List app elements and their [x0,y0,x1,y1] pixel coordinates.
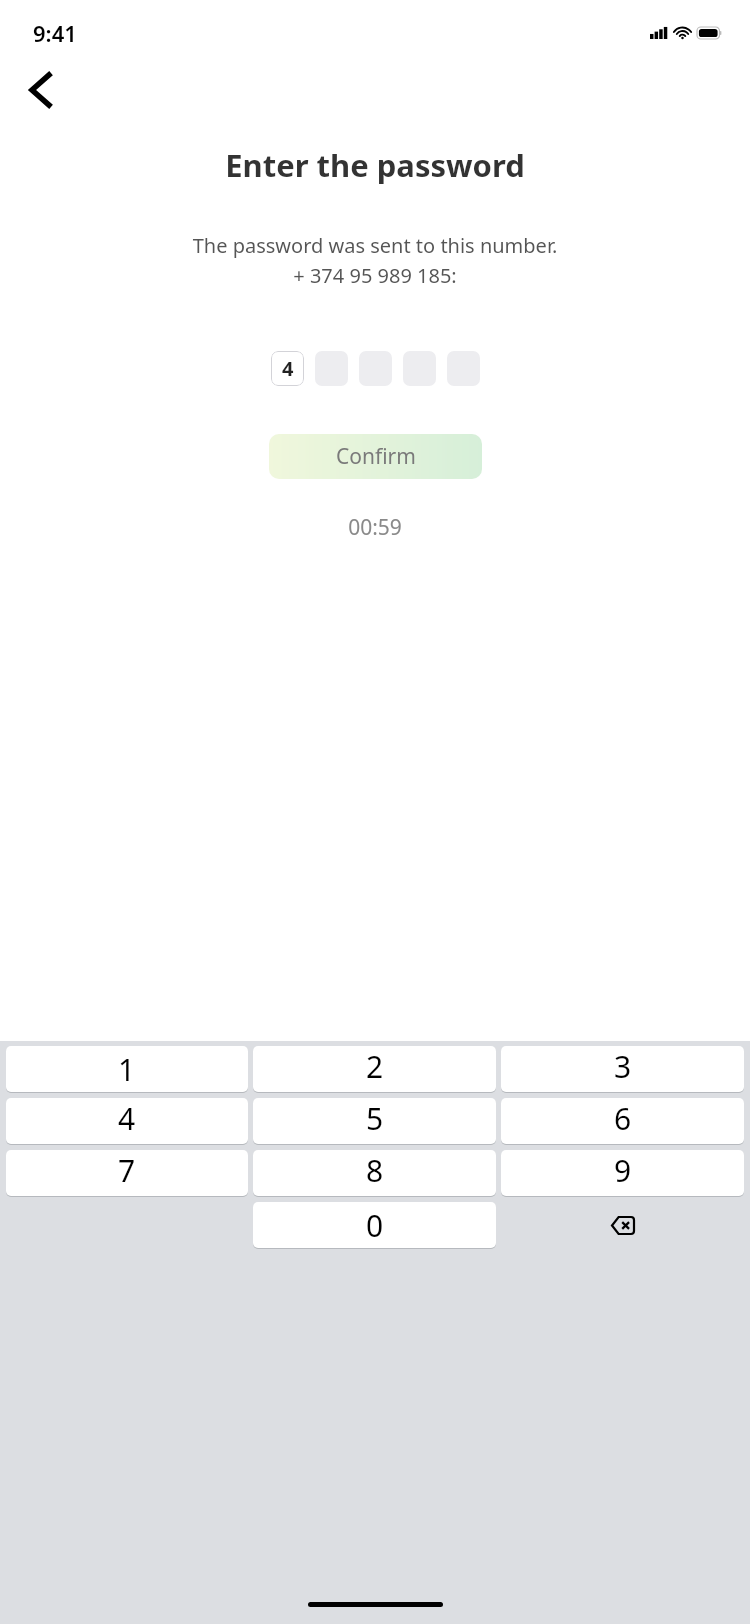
button[interactable]: 2 [253,1046,496,1093]
button[interactable]: Back [10,60,70,120]
button[interactable]: 6 [501,1098,744,1145]
staticText: 8 [366,1150,384,1191]
button[interactable]: 7 [6,1150,248,1197]
staticText: 9:41 [33,18,77,48]
staticText: Confirm [336,442,416,471]
staticText: 3 [614,1046,632,1087]
button[interactable]: 9 [501,1150,744,1197]
button[interactable]: 1 [6,1046,248,1093]
staticText: 5 [366,1098,384,1139]
staticText: 2 [366,1046,384,1087]
staticText: 9 [614,1150,632,1191]
button[interactable]: Backspace [501,1202,744,1249]
staticText: 7 [118,1150,136,1191]
staticText: 6 [614,1098,632,1139]
staticText: 0 [366,1205,384,1246]
button[interactable] [447,351,480,386]
staticText: 4 [282,355,294,382]
button[interactable]: 3 [501,1046,744,1093]
button[interactable]: Confirm [269,434,482,479]
button[interactable]: 8 [253,1150,496,1197]
button[interactable]: 4 [6,1098,248,1145]
button[interactable] [359,351,392,386]
button[interactable] [315,351,348,386]
staticText: 4 [118,1098,136,1139]
staticText: Enter the password [0,144,750,186]
staticText: 1 [118,1049,136,1090]
button[interactable] [403,351,436,386]
staticText: The password was sent to this number. + … [24,232,726,289]
button[interactable]: 0 [253,1202,496,1249]
button[interactable]: 5 [253,1098,496,1145]
staticText: 00:59 [0,513,750,542]
button[interactable]: 4 [271,351,304,386]
